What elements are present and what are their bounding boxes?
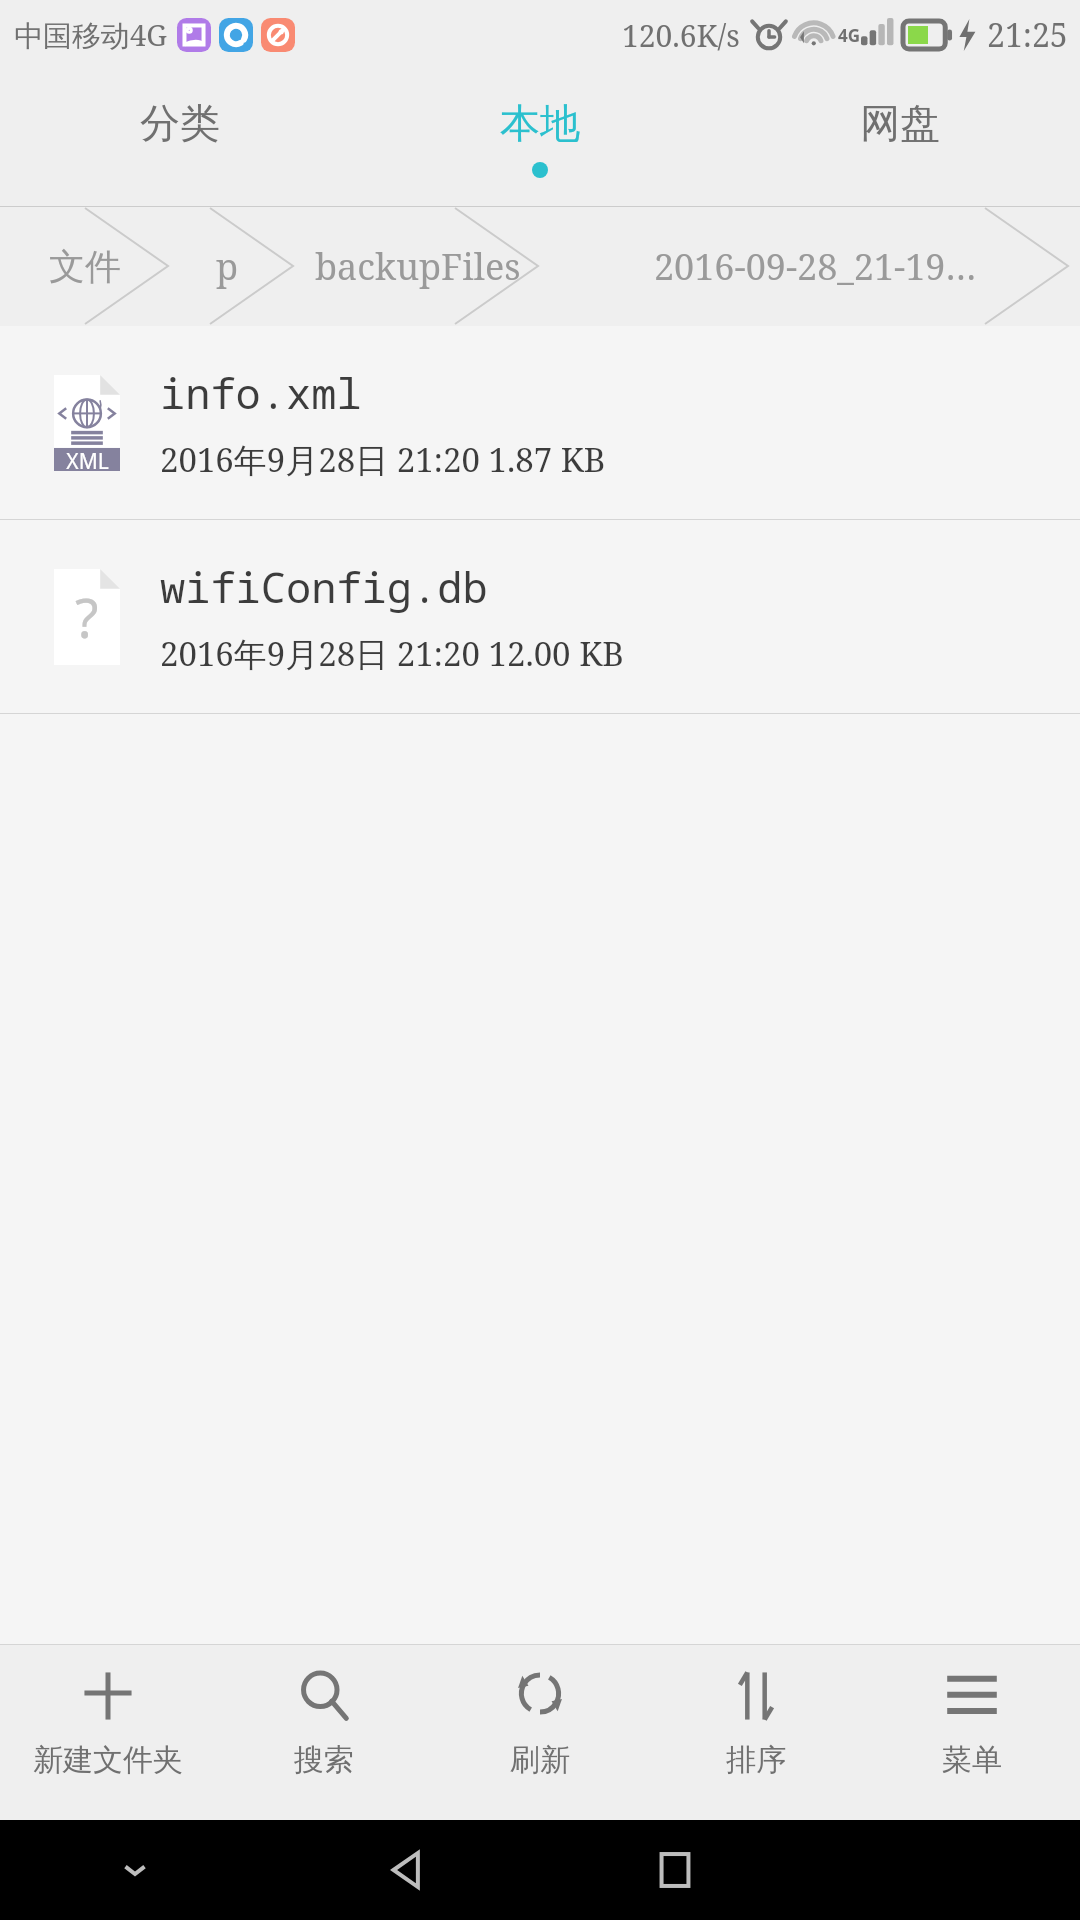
staticText: 2016年9月28日 21:20 1.87 KB	[160, 437, 606, 482]
button[interactable]: backupFiles	[285, 206, 550, 326]
button[interactable]: Back	[270, 1820, 540, 1920]
button[interactable]: 新建文件夹	[0, 1645, 216, 1820]
staticText: 新建文件夹	[33, 1741, 183, 1779]
button[interactable]: 菜单	[864, 1645, 1080, 1820]
staticText: 网盘	[860, 98, 940, 148]
button[interactable]: 排序	[648, 1645, 864, 1820]
staticText: 2016年9月28日 21:20 12.00 KB	[160, 631, 624, 676]
button[interactable]: 刷新	[432, 1645, 648, 1820]
button[interactable]: ?	[0, 520, 1080, 713]
staticText: 排序	[726, 1741, 786, 1779]
staticText: 4G	[838, 24, 861, 47]
button[interactable]: 2016-09-28_21-19…	[550, 206, 1080, 326]
staticText: ?	[75, 580, 99, 654]
staticText: backupFiles	[315, 242, 521, 291]
button[interactable]: 分类	[0, 70, 360, 206]
staticText: p	[216, 242, 239, 291]
button[interactable]: 搜索	[216, 1645, 432, 1820]
staticText: 文件	[49, 244, 121, 289]
button[interactable]: 网盘	[720, 70, 1080, 206]
staticText: 菜单	[942, 1741, 1002, 1779]
button[interactable]: 本地	[360, 70, 720, 206]
staticText: info.xml	[160, 364, 362, 421]
button[interactable]: Home	[540, 1820, 810, 1920]
staticText: 分类	[140, 98, 220, 148]
button[interactable]: Hide	[0, 1820, 270, 1920]
staticText: 刷新	[510, 1741, 570, 1779]
staticText: 本地	[500, 98, 580, 148]
staticText: 2016-09-28_21-19…	[654, 242, 977, 291]
staticText: wifiConfig.db	[160, 558, 488, 615]
staticText: 搜索	[294, 1741, 354, 1779]
staticText: 中国移动4G	[14, 15, 167, 55]
button[interactable]: p	[170, 206, 285, 326]
staticText: 120.6K/s	[622, 15, 740, 56]
button[interactable]: XML	[0, 326, 1080, 519]
button[interactable]: 文件	[0, 206, 170, 326]
staticText: 21:25	[987, 13, 1068, 57]
staticText: XML	[66, 447, 109, 471]
